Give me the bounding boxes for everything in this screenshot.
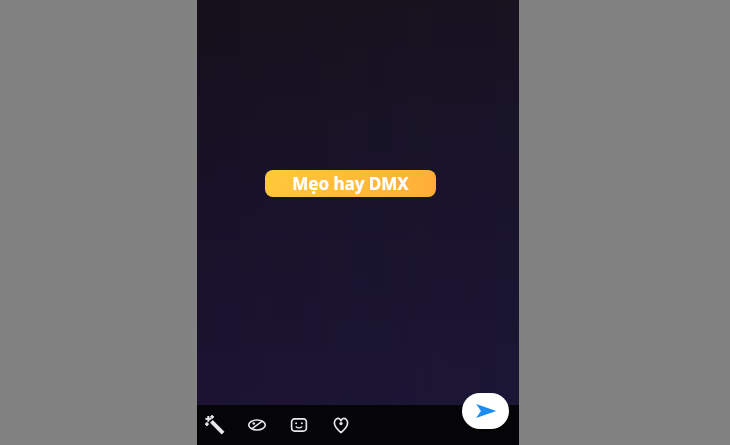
button[interactable]: Mẹo hay DMX [265, 170, 436, 197]
button[interactable]: Magic wand effects [201, 411, 229, 439]
button[interactable]: Stickers [285, 411, 313, 439]
button[interactable]: Send [462, 393, 509, 429]
button[interactable]: Location [327, 411, 355, 439]
button[interactable]: Filters [243, 411, 271, 439]
staticText: Mẹo hay DMX [292, 172, 409, 195]
